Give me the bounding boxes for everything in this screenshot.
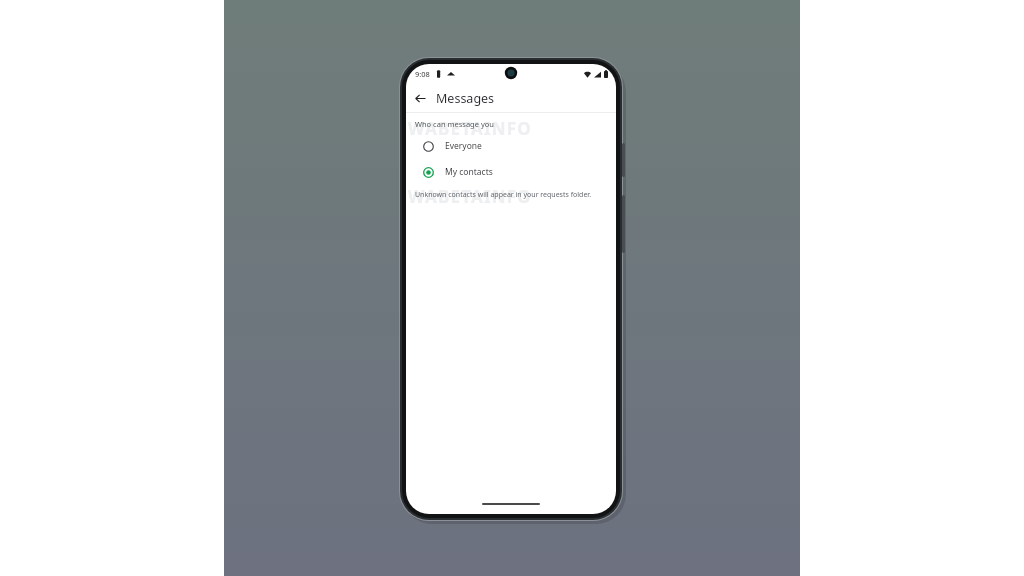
staticText: Who can message you [415, 119, 494, 129]
staticText: Unknown contacts will appear in your req… [415, 190, 592, 200]
staticText: 9:08 [415, 69, 430, 79]
staticText: Messages [436, 90, 495, 107]
button[interactable]: Everyone [406, 136, 616, 156]
staticText: My contacts [445, 166, 493, 178]
staticText: Everyone [445, 140, 482, 152]
button[interactable]: Back [410, 88, 430, 108]
staticText: WABETAINFO [408, 185, 616, 208]
staticText: WABETAINFO [408, 117, 616, 140]
button[interactable]: My contacts [406, 162, 616, 182]
